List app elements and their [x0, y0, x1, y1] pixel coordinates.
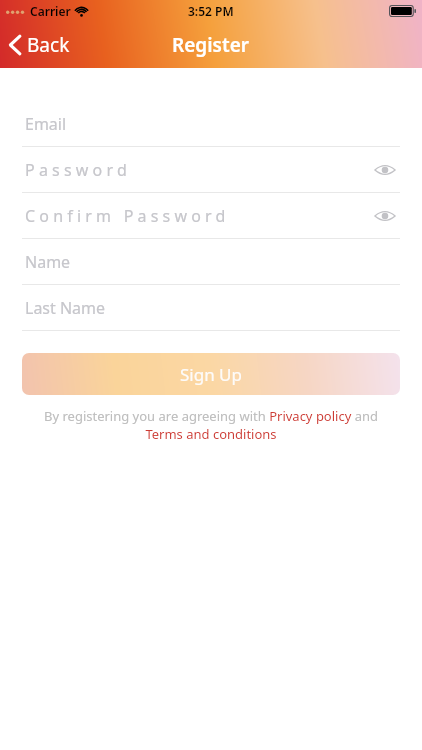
button[interactable]: Sign Up: [22, 353, 400, 395]
staticText: Last Name: [25, 297, 106, 319]
button[interactable]: Confirm Password: [0, 193, 422, 239]
button[interactable]: Show password: [370, 155, 400, 185]
staticText: Back: [27, 32, 70, 58]
staticText: By registering you are agreeing with Pri…: [28, 407, 394, 443]
staticText: Email: [25, 113, 67, 135]
staticText: Name: [25, 251, 71, 273]
staticText: Confirm Password: [25, 205, 230, 227]
button[interactable]: Name: [0, 239, 422, 285]
button[interactable]: Email: [0, 101, 422, 147]
button[interactable]: Last Name: [0, 285, 422, 331]
staticText: Password: [25, 159, 131, 181]
staticText: Carrier: [30, 3, 71, 19]
staticText: 3:52 PM: [188, 3, 234, 19]
staticText: Sign Up: [180, 363, 242, 386]
staticText: Register: [172, 32, 250, 58]
button[interactable]: Back: [8, 22, 70, 68]
button[interactable]: Show password: [370, 201, 400, 231]
button[interactable]: Password: [0, 147, 422, 193]
button[interactable]: By registering you are agreeing with Pri…: [28, 407, 394, 443]
